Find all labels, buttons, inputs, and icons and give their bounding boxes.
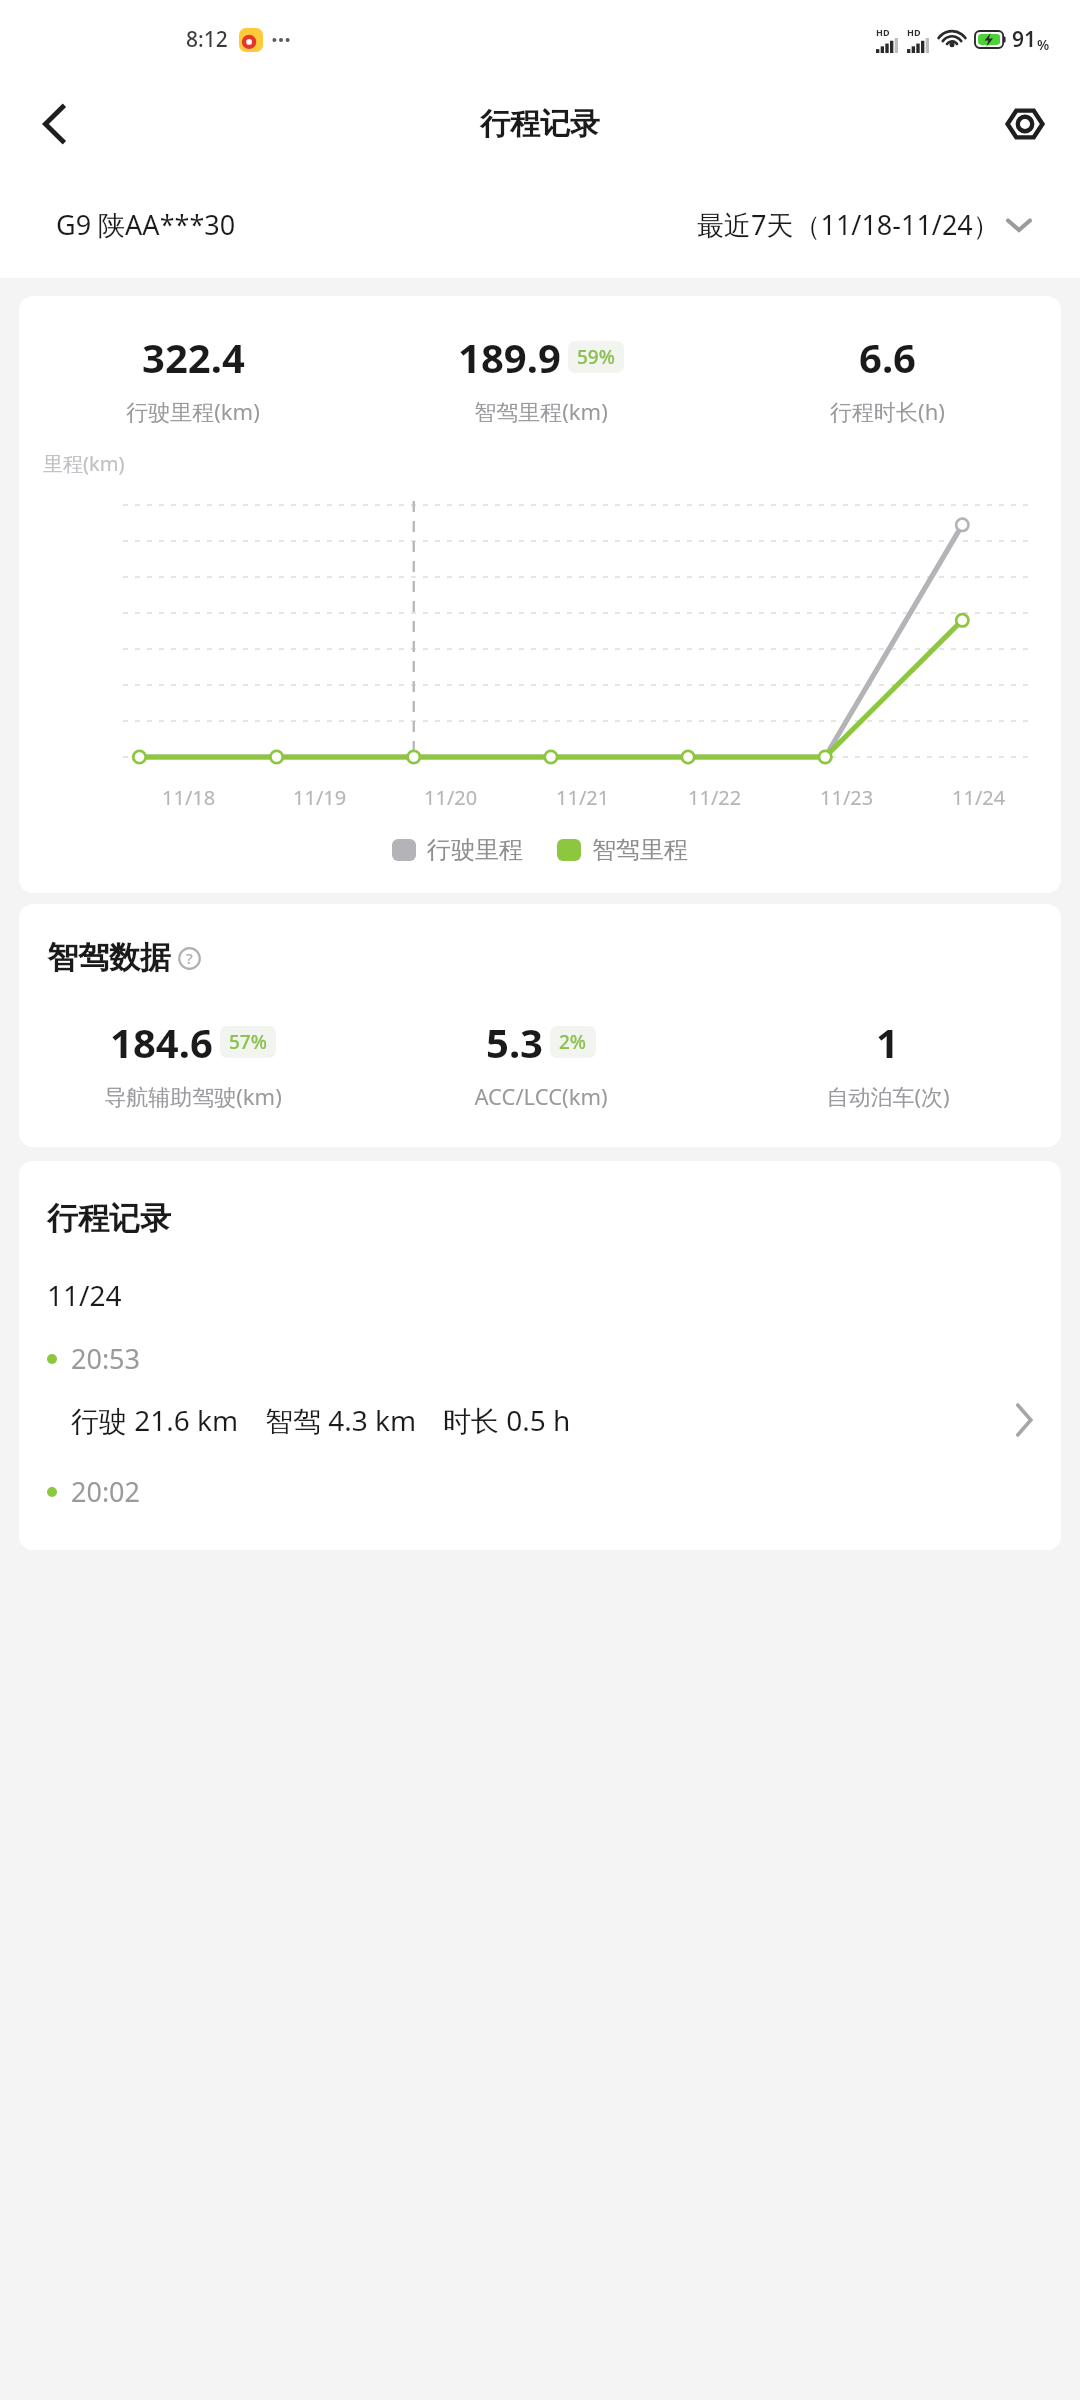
staticText: 20:53: [71, 1340, 141, 1377]
button[interactable]: 1: [714, 1015, 1061, 1111]
staticText: 里程(km): [43, 450, 125, 477]
staticText: 智驾数据: [47, 938, 171, 977]
button[interactable]: Back: [24, 93, 86, 155]
button[interactable]: 6.6: [714, 330, 1061, 426]
staticText: 11/21: [556, 784, 610, 811]
staticText: HD: [907, 26, 921, 38]
staticText: 8:12: [186, 25, 228, 54]
staticText: 最近7天（11/18-11/24）: [697, 206, 1000, 243]
staticText: 自动泊车(次): [826, 1081, 950, 1111]
staticText: 11/18: [162, 784, 216, 811]
staticText: 行驶里程: [427, 835, 523, 865]
button[interactable]: 5.3: [367, 1015, 714, 1111]
staticText: 行程记录: [480, 105, 600, 143]
staticText: 11/24: [47, 1276, 122, 1314]
staticText: G9 陕AA***30: [56, 206, 236, 243]
staticText: 行驶 21.6 km: [71, 1401, 239, 1439]
staticText: 行程时长(h): [830, 396, 945, 426]
button[interactable]: 189.9: [367, 330, 714, 426]
button[interactable]: 184.6: [19, 1015, 367, 1111]
staticText: 0: [117, 756, 129, 757]
staticText: 57%: [229, 1029, 267, 1055]
staticText: 59%: [577, 344, 615, 370]
button[interactable]: 帮助: [174, 943, 204, 973]
staticText: 6.6: [859, 330, 916, 384]
staticText: 20:02: [71, 1473, 141, 1510]
staticText: ?: [186, 948, 193, 968]
staticText: 11/22: [688, 784, 742, 811]
staticText: 导航辅助驾驶(km): [104, 1081, 282, 1111]
staticText: 189.9: [458, 330, 561, 384]
staticText: 行驶里程(km): [126, 396, 260, 426]
staticText: 11/20: [424, 784, 478, 811]
staticText: 91: [1012, 25, 1037, 54]
staticText: 11/23: [820, 784, 874, 811]
staticText: 5.3: [486, 1015, 543, 1069]
staticText: 时长 0.5 h: [443, 1401, 571, 1439]
staticText: %: [1037, 35, 1050, 54]
staticText: HD: [876, 26, 890, 38]
staticText: 184.6: [110, 1015, 213, 1069]
staticText: 322.4: [142, 330, 245, 384]
staticText: 智驾 4.3 km: [265, 1401, 417, 1439]
staticText: 智驾里程(km): [474, 396, 608, 426]
staticText: ACC/LCC(km): [474, 1081, 608, 1111]
staticText: 11/24: [952, 784, 1006, 811]
button[interactable]: 智驾里程: [557, 835, 688, 865]
staticText: 1: [876, 1015, 899, 1069]
staticText: 2%: [559, 1029, 587, 1055]
staticText: 智驾里程: [592, 835, 688, 865]
staticText: 11/19: [293, 784, 347, 811]
button[interactable]: 行驶里程: [392, 835, 523, 865]
button[interactable]: 322.4: [19, 330, 367, 426]
button[interactable]: 20:53: [19, 1340, 1061, 1439]
button[interactable]: Settings: [994, 93, 1056, 155]
button[interactable]: 最近7天（11/18-11/24）: [693, 200, 1034, 249]
staticText: 行程记录: [47, 1199, 171, 1238]
